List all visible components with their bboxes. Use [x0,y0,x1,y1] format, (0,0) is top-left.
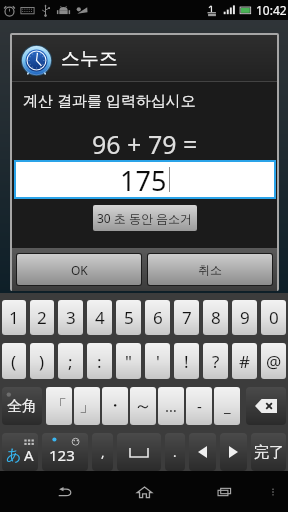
button[interactable]: : [87,343,112,379]
staticText: あ [6,446,22,465]
button[interactable]: Back [48,477,80,507]
button[interactable]: ～ [130,387,156,425]
button[interactable]: 8 [203,300,228,335]
button[interactable]: ・ [102,387,128,425]
staticText: : [97,350,102,373]
button[interactable]: 175 [16,162,274,197]
staticText: # [239,350,250,373]
staticText: 10:42 [256,2,287,18]
staticText: 4 [95,306,105,329]
button[interactable]: 全角 [2,387,42,425]
staticText: 1 [9,306,19,329]
staticText: 「 [51,396,67,416]
staticText: " [125,350,132,373]
staticText: 9 [240,306,250,329]
button[interactable]: 7 [174,300,199,335]
staticText: 스누즈 [61,47,118,71]
button[interactable]: . [165,433,185,471]
button[interactable]: 3 [58,300,83,335]
staticText: . [173,443,177,461]
staticText: 完了 [254,443,284,462]
button[interactable]: ) [30,343,54,379]
staticText: 175 [120,162,167,197]
button[interactable]: 30 초 동안 음소거 [93,205,197,231]
staticText: ・ [107,396,123,416]
button[interactable]: @ [261,343,286,379]
button[interactable]: 」 [74,387,100,425]
button[interactable]: ' [145,343,170,379]
staticText: 8 [211,306,221,329]
staticText: 30 초 동안 음소거 [97,210,193,226]
staticText: 6 [153,306,163,329]
button[interactable]: " [116,343,141,379]
staticText: ' [156,350,160,373]
button[interactable]: Move right [220,433,247,471]
button[interactable]: 5 [116,300,141,335]
button[interactable]: ( [2,343,26,379]
staticText: ; [68,350,73,373]
button[interactable]: Recents [208,477,240,507]
staticText: ～ [134,395,152,418]
staticText: 123 [49,445,75,465]
button[interactable]: More options [258,477,288,507]
button[interactable]: ! [174,343,199,379]
button[interactable]: # [232,343,257,379]
staticText: , [101,443,105,461]
button[interactable]: 취소 [148,254,272,285]
button[interactable]: 0 [261,300,286,335]
staticText: 全角 [7,397,37,416]
button[interactable]: - [186,387,212,425]
button[interactable]: あ [2,433,38,471]
button[interactable]: Backspace [246,387,286,425]
staticText: 」 [79,396,95,416]
button[interactable]: Move left [189,433,216,471]
button[interactable]: ; [58,343,83,379]
staticText: @ [266,350,282,373]
staticText: ? [212,350,220,373]
staticText: 계산 결과를 입력하십시오 [23,90,196,110]
button[interactable]: … [158,387,184,425]
staticText: 취소 [198,262,222,277]
staticText: ! [184,350,189,373]
button[interactable]: , [92,433,113,471]
staticText: 2 [37,306,47,329]
button[interactable]: 1 [2,300,26,335]
staticText: A [24,445,34,465]
staticText: 96 + 79 = [92,127,198,161]
button[interactable]: 2 [30,300,54,335]
button[interactable]: 123 [42,433,88,471]
button[interactable]: OK [17,254,141,285]
button[interactable]: 完了 [251,433,286,471]
button[interactable]: ? [203,343,228,379]
button[interactable]: _ [214,387,240,425]
staticText: … [165,396,177,416]
staticText: ( [11,350,17,373]
staticText: 5 [124,306,134,329]
staticText: 0 [269,306,279,329]
button[interactable]: Space [117,433,161,471]
button[interactable]: 「 [46,387,72,425]
staticText: OK [71,262,88,278]
staticText: 7 [182,306,192,329]
button[interactable]: 6 [145,300,170,335]
button[interactable]: 9 [232,300,257,335]
staticText: - [197,396,202,416]
staticText: ) [39,350,45,373]
staticText: _ [224,396,231,416]
button[interactable]: 4 [87,300,112,335]
button[interactable]: Home [128,477,160,507]
staticText: 3 [66,306,76,329]
